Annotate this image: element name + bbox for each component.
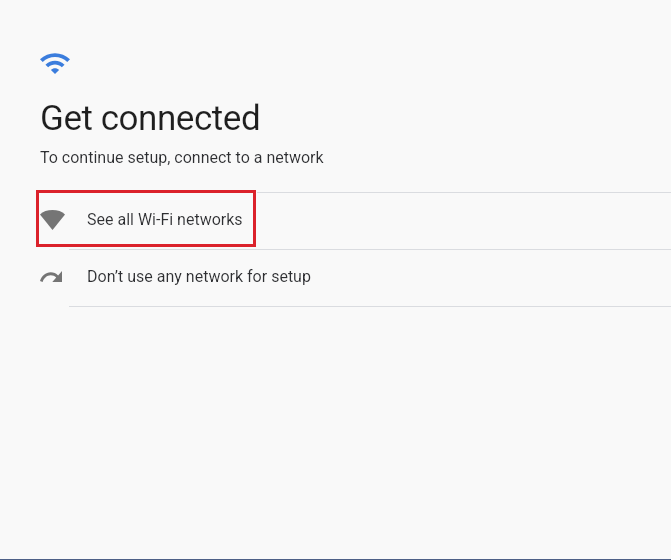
staticText: To continue setup, connect to a network: [40, 148, 324, 167]
staticText: Get connected: [40, 98, 261, 139]
other: Wi-Fi: [40, 54, 70, 74]
staticText: See all Wi-Fi networks: [87, 210, 243, 229]
staticText: Don’t use any network for setup: [87, 267, 311, 286]
button[interactable]: See all Wi-Fi networks: [0, 192, 671, 249]
button[interactable]: Don’t use any network for setup: [0, 249, 671, 306]
